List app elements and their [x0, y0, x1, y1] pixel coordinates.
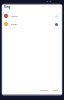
- other: Select: [55, 15, 58, 18]
- button[interactable]: Silent: [0, 22, 64, 26]
- staticText: SAVE: [53, 89, 59, 92]
- staticText: Alarm: [11, 15, 18, 18]
- staticText: Ring: [4, 5, 11, 9]
- other: Select: [55, 23, 58, 26]
- staticText: Silent: [11, 23, 18, 26]
- button[interactable]: CANCEL: [39, 88, 50, 93]
- staticText: CANCEL: [40, 89, 49, 92]
- button[interactable]: Alarm: [0, 14, 64, 18]
- button[interactable]: SAVE: [52, 88, 60, 93]
